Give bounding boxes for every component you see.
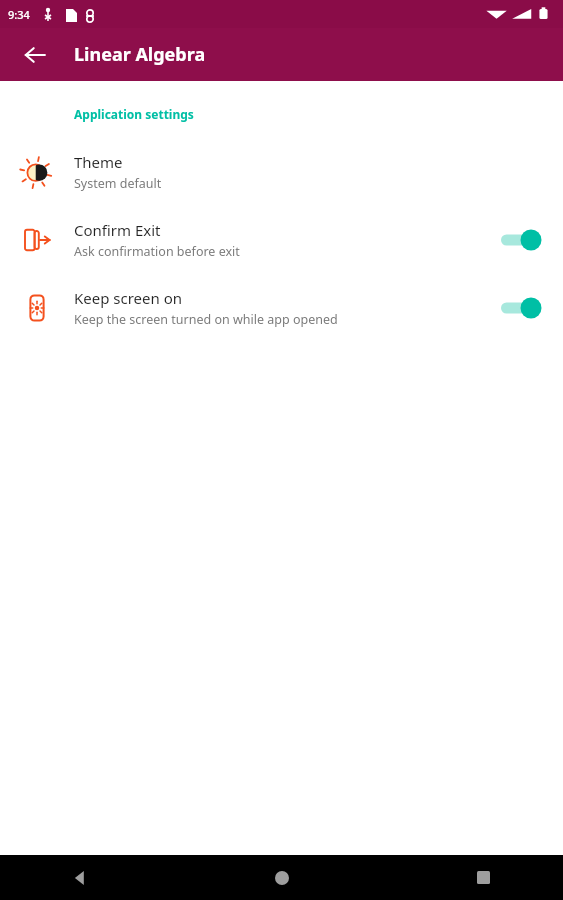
staticText: Linear Algebra <box>74 42 206 67</box>
button[interactable]: Confirm Exit switch, on <box>499 225 543 255</box>
staticText: 9:34 <box>8 7 30 22</box>
staticText: Theme <box>74 152 123 172</box>
button[interactable]: Theme <box>0 138 563 206</box>
button[interactable]: Keep screen on switch, on <box>499 293 543 323</box>
staticText: Confirm Exit <box>74 220 161 240</box>
staticText: System default <box>74 175 162 192</box>
staticText: Keep the screen turned on while app open… <box>74 311 338 328</box>
button[interactable]: Navigate up <box>12 32 58 78</box>
button[interactable]: Keep screen on <box>0 274 563 342</box>
button[interactable]: Home <box>222 855 342 900</box>
staticText: Keep screen on <box>74 288 183 308</box>
staticText: Ask confirmation before exit <box>74 243 240 260</box>
button[interactable]: Recent apps <box>403 855 563 900</box>
button[interactable]: Back <box>0 855 160 900</box>
button[interactable]: Confirm Exit <box>0 206 563 274</box>
staticText: Application settings <box>74 106 194 122</box>
